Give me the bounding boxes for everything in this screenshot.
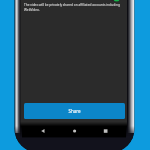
staticText: Share xyxy=(68,108,81,114)
staticText: The video will be privately shared on af… xyxy=(24,3,122,12)
button[interactable]: Home xyxy=(67,123,83,137)
button[interactable]: Back xyxy=(35,123,51,137)
button[interactable]: Recent apps xyxy=(98,123,114,137)
button[interactable]: Share xyxy=(24,103,125,119)
